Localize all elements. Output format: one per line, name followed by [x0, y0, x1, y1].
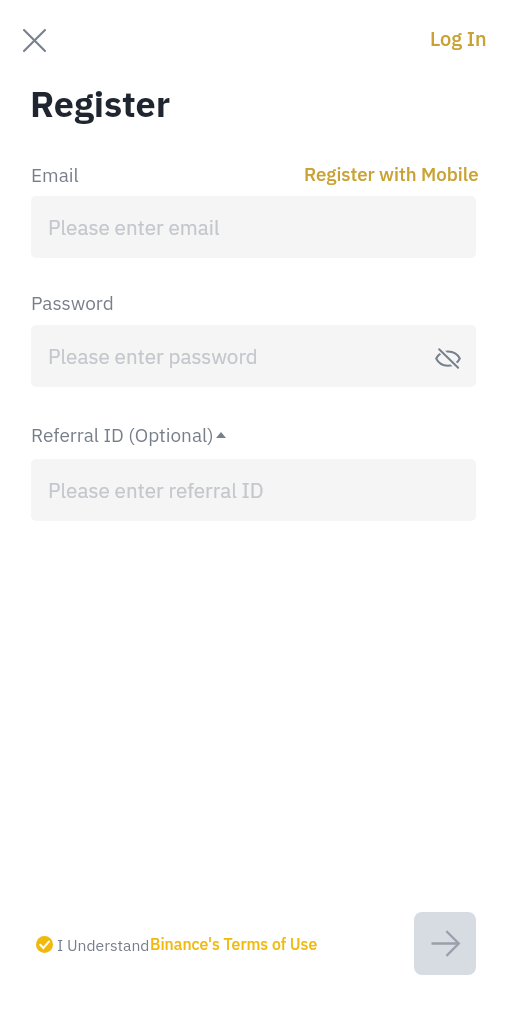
button[interactable]: Please enter referral ID [31, 459, 476, 521]
button[interactable]: Please enter email [31, 196, 476, 258]
button[interactable]: Referral ID (Optional) [31, 423, 226, 448]
button[interactable]: Close [12, 18, 57, 63]
button[interactable]: Please enter password [31, 325, 476, 387]
staticText: Password [31, 291, 114, 316]
staticText: Please enter password [48, 343, 258, 370]
staticText: Referral ID (Optional) [31, 423, 214, 448]
staticText: Register [30, 80, 171, 127]
button[interactable]: Register with Mobile [296, 156, 487, 192]
staticText: I Understand [57, 935, 150, 955]
staticText: Binance's Terms of Use [150, 934, 318, 955]
button[interactable]: Log In [418, 19, 499, 57]
button[interactable]: I Understand [34, 932, 320, 957]
button[interactable]: Show password [431, 341, 465, 375]
staticText: Please enter referral ID [48, 477, 264, 504]
staticText: Please enter email [48, 214, 220, 241]
staticText: Register with Mobile [304, 162, 479, 186]
staticText: Email [31, 163, 79, 188]
staticText: Log In [430, 25, 487, 51]
button[interactable]: Next [414, 912, 476, 975]
